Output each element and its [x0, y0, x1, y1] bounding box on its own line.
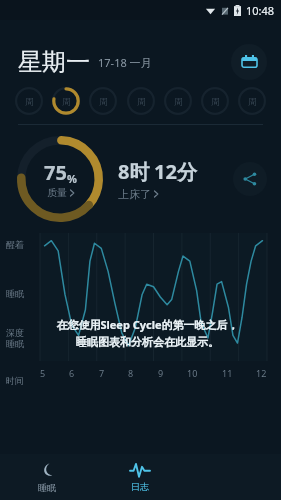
staticText: 周	[25, 96, 34, 107]
staticText: 在您使用Sleep Cycle的第一晚之后，	[56, 317, 239, 332]
staticText: 8	[128, 367, 134, 379]
staticText: 上床了	[118, 187, 151, 201]
button[interactable]: 周	[51, 86, 81, 116]
button[interactable]: 日志	[93, 454, 187, 500]
staticText: 周	[137, 96, 146, 107]
staticText: 8时	[118, 158, 150, 185]
staticText: %	[67, 171, 77, 186]
button[interactable]: 周	[14, 86, 44, 116]
staticText: 周	[99, 96, 108, 107]
button[interactable]: Share	[233, 162, 267, 196]
staticText: 深度	[6, 327, 24, 338]
button[interactable]: 周	[237, 86, 267, 116]
button[interactable]: 睡眠	[0, 454, 93, 500]
staticText: 睡眠图表和分析会在此显示。	[76, 335, 219, 349]
button[interactable]: 周	[200, 86, 230, 116]
staticText: 醒着	[6, 239, 24, 250]
staticText: 周	[174, 96, 183, 107]
button[interactable]: 周	[126, 86, 156, 116]
staticText: 5	[40, 367, 46, 379]
staticText: 12	[256, 367, 267, 379]
button[interactable]: Calendar	[231, 44, 267, 80]
staticText: 睡眠	[6, 338, 24, 349]
staticText: 17-18 一月	[98, 55, 152, 70]
staticText: 睡眠	[6, 288, 24, 299]
staticText: 周	[211, 96, 220, 107]
staticText: 睡眠	[38, 482, 56, 493]
staticText: 周	[248, 96, 257, 107]
staticText: 9	[158, 367, 164, 379]
button[interactable]: 75	[16, 135, 104, 223]
staticText: 6	[69, 367, 75, 379]
staticText: 10	[187, 367, 198, 379]
staticText: 质量	[47, 186, 67, 199]
staticText: 日志	[131, 481, 149, 492]
staticText: 时间	[6, 375, 24, 386]
staticText: 周	[62, 96, 71, 107]
staticText: 75	[44, 159, 67, 186]
staticText: 7	[99, 367, 105, 379]
staticText: 11	[222, 367, 233, 379]
button[interactable]: 周	[88, 86, 118, 116]
staticText: 10:48	[246, 3, 275, 18]
staticText: 星期一	[18, 47, 90, 77]
staticText: 12分	[154, 158, 197, 185]
button[interactable]: 周	[163, 86, 193, 116]
